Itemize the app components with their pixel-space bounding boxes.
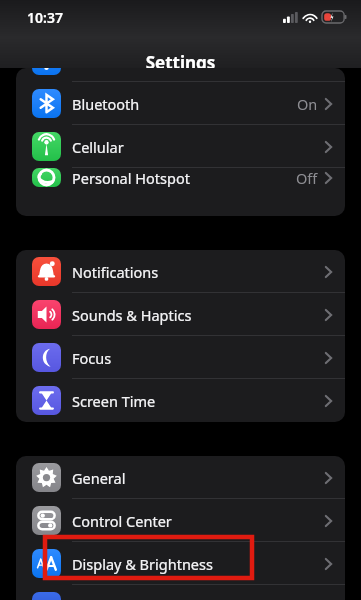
staticText: Screen Time (72, 391, 156, 411)
staticText: Settings (0, 51, 361, 74)
staticText: Notifications (72, 262, 159, 282)
staticText: Off (296, 168, 318, 187)
staticText: Display & Brightness (72, 554, 213, 574)
staticText: Personal Hotspot (72, 168, 190, 187)
button[interactable]: Display & Brightness (16, 542, 345, 585)
staticText: 10:37 (27, 8, 63, 27)
staticText: Focus (72, 348, 112, 368)
staticText: Bluetooth (72, 94, 140, 114)
staticText: Cellular (72, 137, 124, 157)
staticText: On (297, 94, 318, 114)
staticText: Control Center (72, 511, 172, 531)
button[interactable]: Screen Time (16, 379, 345, 422)
staticText: Sounds & Haptics (72, 305, 192, 325)
button[interactable]: Home Screen (16, 585, 345, 600)
button[interactable]: Sounds & Haptics (16, 293, 345, 336)
staticText: General (72, 468, 126, 488)
button[interactable]: Bluetooth (16, 82, 345, 125)
button[interactable]: Focus (16, 336, 345, 379)
button[interactable]: Notifications (16, 250, 345, 293)
button[interactable]: Control Center (16, 499, 345, 542)
button[interactable]: General (16, 456, 345, 499)
button[interactable]: Cellular (16, 125, 345, 168)
button[interactable]: Personal Hotspot (16, 168, 345, 187)
button[interactable]: Wi-Fi (16, 68, 345, 82)
